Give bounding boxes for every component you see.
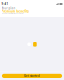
staticText: Premium benefits — [2, 10, 29, 13]
button[interactable]: Get started — [2, 74, 62, 78]
staticText: Renews automatically each month — [2, 13, 24, 14]
staticText: 9:41 — [2, 2, 9, 6]
staticText: Your plan — [2, 7, 16, 10]
staticText: Get started — [24, 74, 40, 78]
